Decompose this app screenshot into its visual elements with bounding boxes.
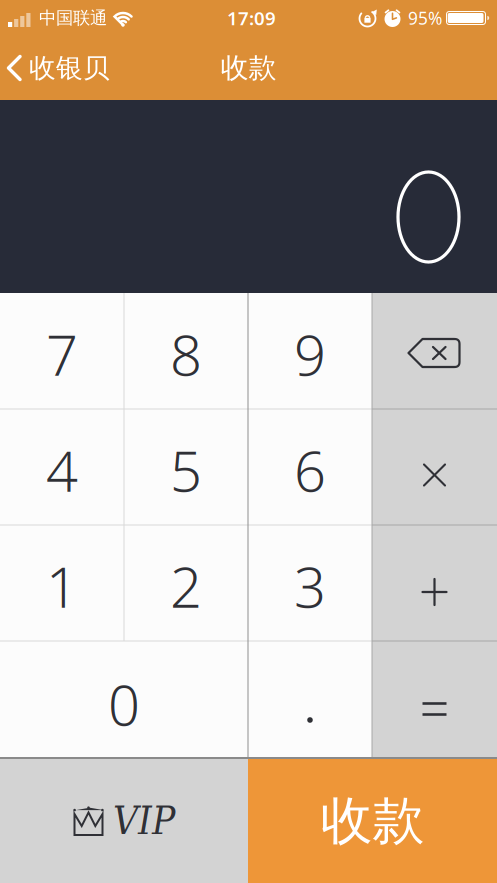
button[interactable]: 删除 xyxy=(372,293,497,409)
button[interactable]: 3 xyxy=(248,525,372,641)
staticText: 8 xyxy=(170,317,202,391)
button[interactable]: 0 xyxy=(0,641,248,757)
staticText: 2 xyxy=(170,549,202,623)
staticText: 中国联通 xyxy=(39,7,107,29)
staticText: 7 xyxy=(46,317,78,391)
staticText: 收款 xyxy=(320,789,424,853)
staticText: 95% xyxy=(408,6,442,29)
button[interactable]: 乘 xyxy=(372,409,497,525)
staticText: 收银贝 xyxy=(29,52,110,84)
staticText: 17:09 xyxy=(227,6,276,30)
button[interactable]: 5 xyxy=(124,409,248,525)
button[interactable]: 收款 xyxy=(248,759,497,883)
button[interactable]: 小数点 xyxy=(248,641,372,757)
staticText: 9 xyxy=(294,317,326,391)
staticText: 1 xyxy=(46,549,78,623)
button[interactable]: 7 xyxy=(0,293,124,409)
staticText: 5 xyxy=(170,433,202,507)
button[interactable]: 2 xyxy=(124,525,248,641)
button[interactable]: 9 xyxy=(248,293,372,409)
staticText: VIP xyxy=(113,798,175,843)
button[interactable]: 4 xyxy=(0,409,124,525)
button[interactable]: 等于 xyxy=(372,641,497,757)
staticText: 收款 xyxy=(220,51,276,85)
button[interactable]: 1 xyxy=(0,525,124,641)
staticText: 6 xyxy=(294,433,326,507)
staticText: 4 xyxy=(46,433,78,507)
button[interactable]: 返回收银贝 xyxy=(0,52,110,84)
button[interactable]: VIP xyxy=(0,759,248,883)
button[interactable]: 8 xyxy=(124,293,248,409)
staticText: 0 xyxy=(108,667,140,741)
button[interactable]: 加 xyxy=(372,525,497,641)
staticText: 3 xyxy=(294,549,326,623)
button[interactable]: 6 xyxy=(248,409,372,525)
